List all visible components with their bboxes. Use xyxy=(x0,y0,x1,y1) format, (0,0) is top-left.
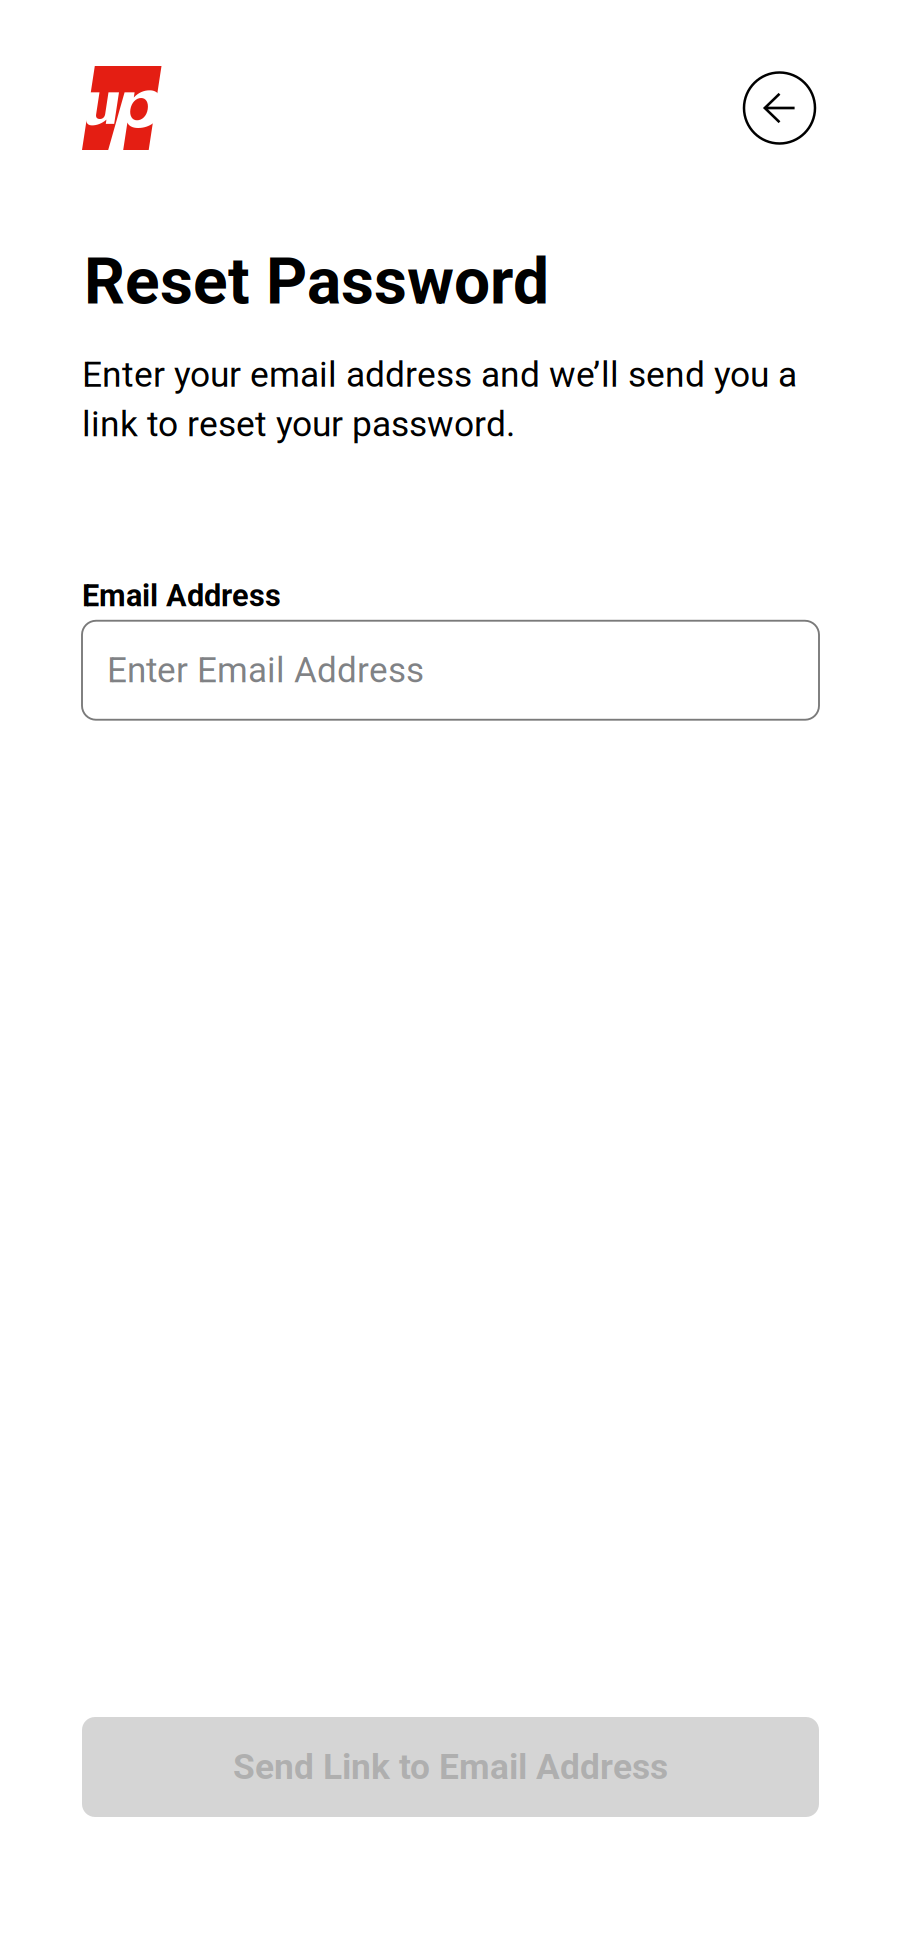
button[interactable]: Send Link to Email Address xyxy=(82,1717,819,1817)
staticText: Reset Password xyxy=(84,244,549,319)
button[interactable]: Back xyxy=(742,71,816,145)
staticText: Enter Email Address xyxy=(107,650,424,691)
staticText: Enter your email address and we’ll send … xyxy=(82,354,797,445)
staticText: Email Address xyxy=(82,578,281,614)
staticText: Send Link to Email Address xyxy=(233,1746,668,1788)
button[interactable]: Email Address xyxy=(82,621,819,720)
